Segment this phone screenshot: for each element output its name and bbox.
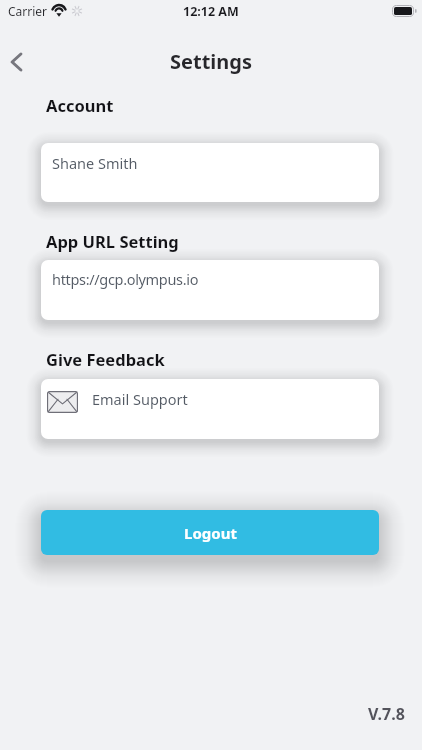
- staticText: Shane Smith: [52, 153, 138, 173]
- staticText: Email Support: [92, 389, 188, 409]
- button[interactable]: https://gcp.olympus.io: [41, 260, 379, 320]
- staticText: Logout: [184, 523, 237, 543]
- staticText: Settings: [170, 48, 252, 75]
- staticText: Give Feedback: [46, 348, 165, 370]
- staticText: 12:12 AM: [183, 3, 239, 20]
- button[interactable]: Email Support: [41, 379, 379, 439]
- staticText: https://gcp.olympus.io: [52, 269, 199, 289]
- staticText: Carrier: [8, 3, 48, 19]
- button[interactable]: Back: [0, 38, 40, 86]
- staticText: Account: [46, 94, 114, 116]
- staticText: App URL Setting: [46, 230, 179, 252]
- button[interactable]: Shane Smith: [41, 143, 379, 202]
- staticText: V.7.8: [368, 703, 405, 725]
- button[interactable]: Logout: [41, 510, 379, 555]
